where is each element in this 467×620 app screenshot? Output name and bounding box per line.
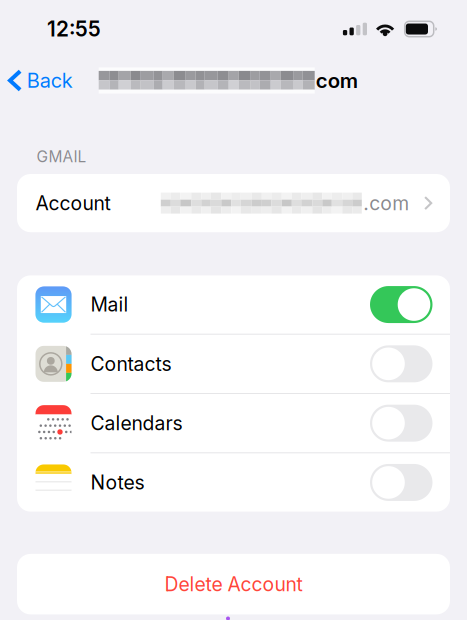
staticText: GMAIL xyxy=(36,147,86,166)
button[interactable]: Calendars xyxy=(17,394,450,452)
staticText: Contacts xyxy=(90,352,171,376)
staticText: Notes xyxy=(90,471,144,494)
staticText: Account xyxy=(35,191,110,215)
button[interactable]: Back xyxy=(0,58,99,102)
staticText: com xyxy=(316,68,358,93)
button[interactable]: Notes xyxy=(17,453,450,512)
button[interactable]: Account xyxy=(17,174,450,232)
staticText: Calendars xyxy=(90,411,182,435)
staticText: Mail xyxy=(90,293,128,316)
staticText: .com xyxy=(363,191,409,215)
staticText: Back xyxy=(27,68,73,93)
staticText: 12:55 xyxy=(47,16,101,42)
staticText: Delete Account xyxy=(164,572,302,596)
button[interactable]: Contacts xyxy=(17,335,450,393)
button[interactable]: Mail xyxy=(17,275,450,334)
button[interactable]: Delete Account xyxy=(17,554,450,614)
